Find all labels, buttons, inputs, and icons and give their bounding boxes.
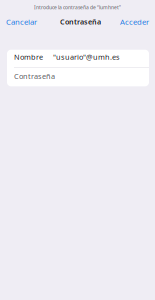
staticText: Acceder [120, 16, 149, 27]
button[interactable]: Contraseña [7, 68, 149, 86]
staticText: Introduce la contraseña de “lumhnet” [34, 4, 121, 11]
staticText: Cancelar [6, 16, 37, 27]
staticText: "usuario"@umh.es [53, 52, 120, 62]
staticText: Contraseña [14, 71, 55, 81]
staticText: Contraseña [60, 17, 101, 27]
button[interactable]: Acceder [120, 16, 149, 27]
button[interactable]: Nombre [7, 50, 149, 67]
button[interactable]: Cancelar [6, 16, 37, 27]
staticText: Nombre [14, 52, 43, 62]
